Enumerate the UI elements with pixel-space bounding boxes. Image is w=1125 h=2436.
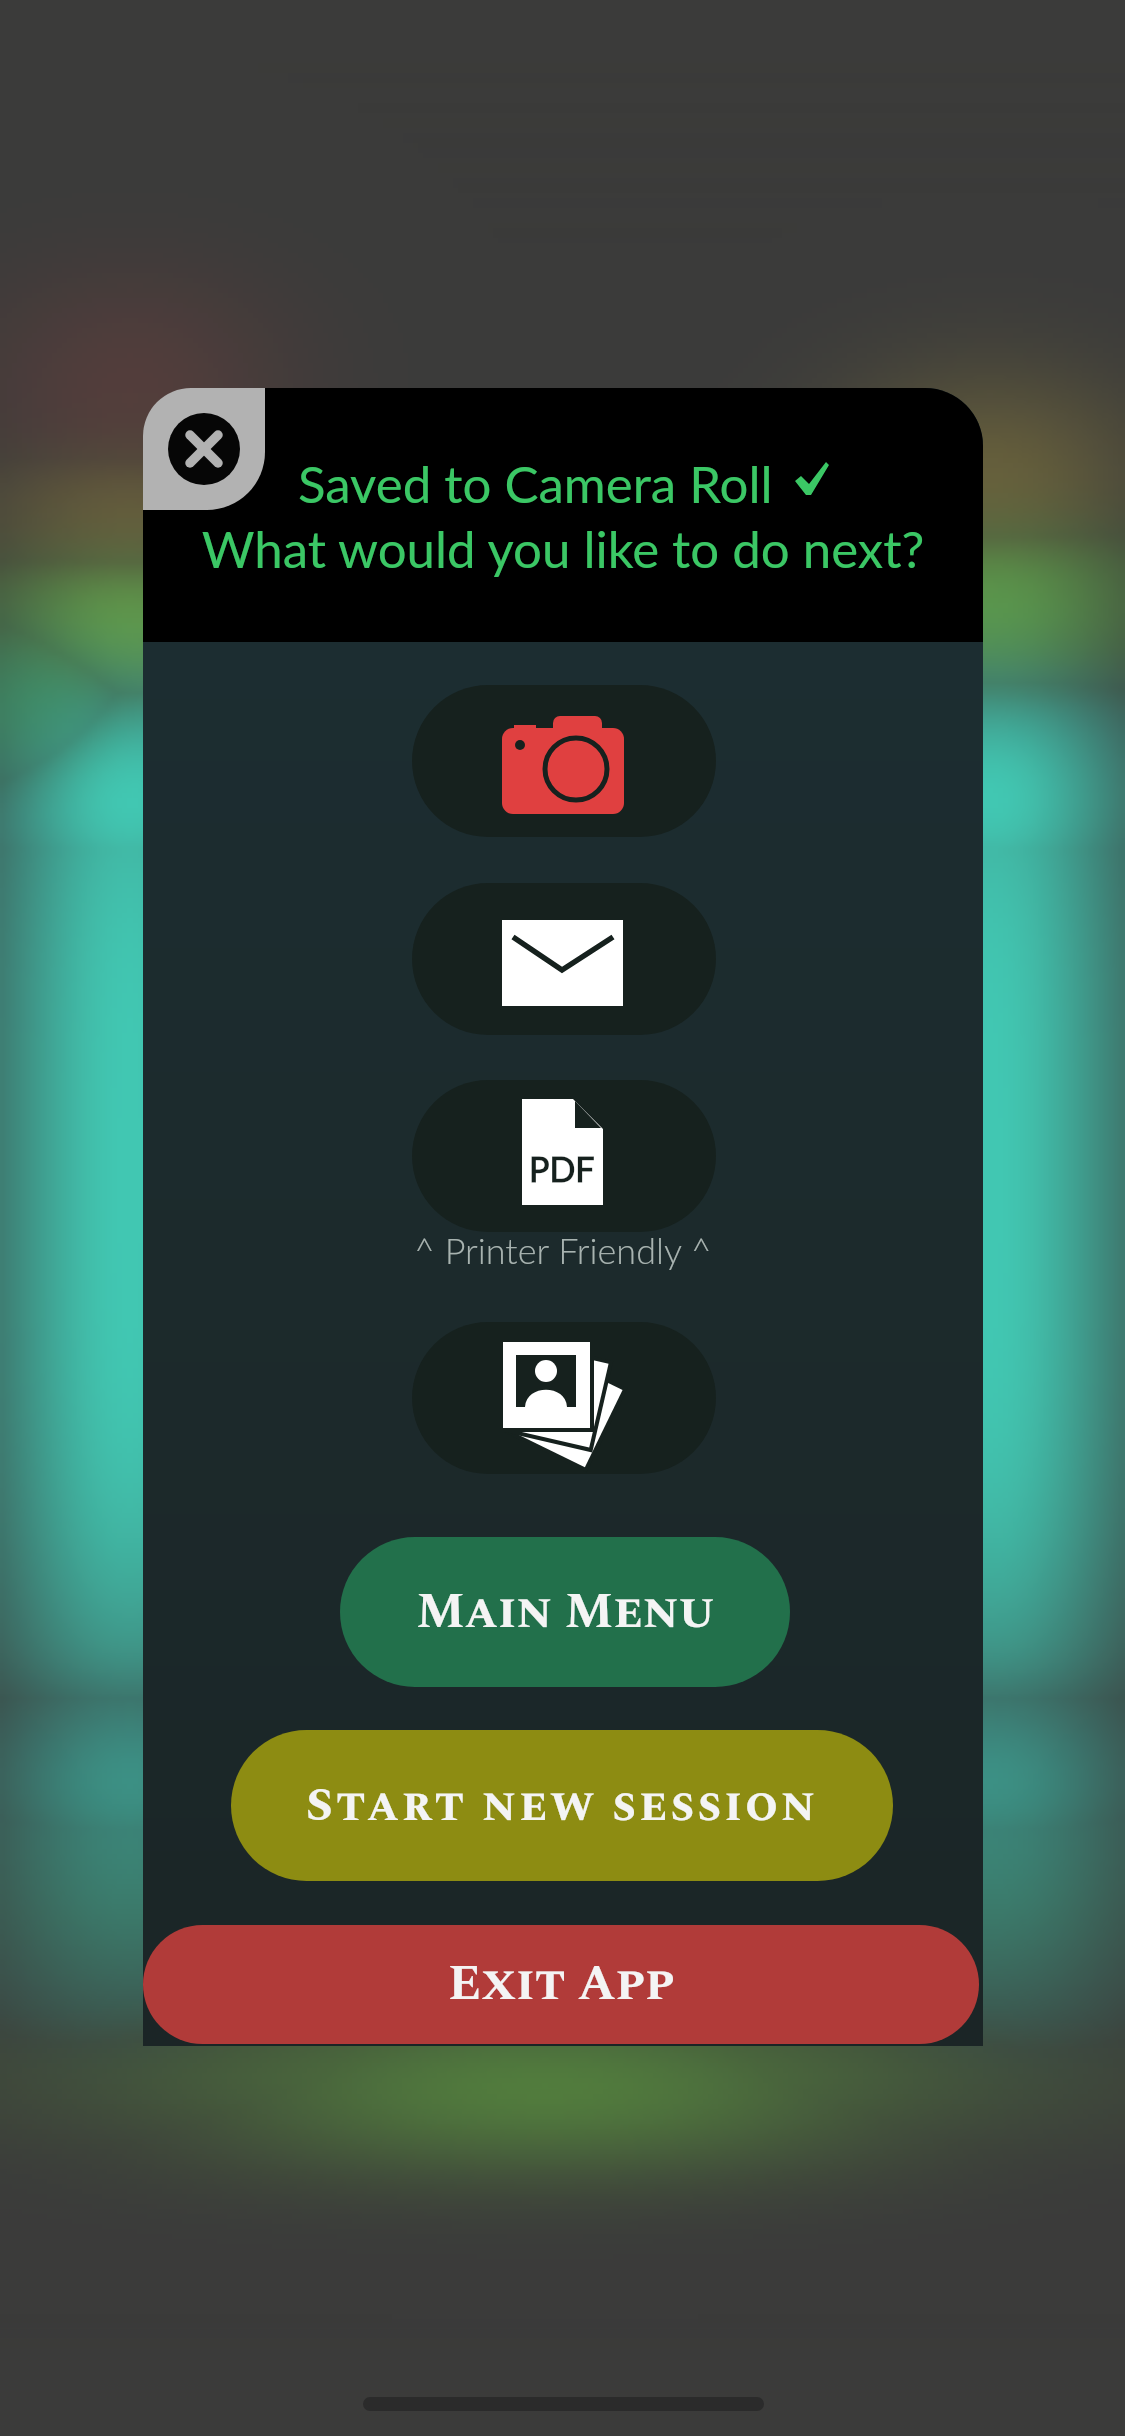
button[interactable]: Exit App (143, 1925, 979, 2044)
button[interactable]: Start new session (231, 1730, 893, 1881)
staticText: PDF (529, 1148, 595, 1189)
staticText: Saved to Camera Roll (298, 453, 773, 514)
button[interactable]: Photo gallery (412, 1322, 716, 1474)
button[interactable]: Open PDF (412, 1080, 716, 1232)
staticText: Start new session (306, 1770, 819, 1842)
button[interactable]: Save to camera roll (412, 685, 716, 837)
staticText: What would you like to do next? (143, 518, 983, 579)
staticText: Exit App (448, 1947, 675, 2022)
button[interactable]: Main Menu (340, 1537, 790, 1687)
staticText: ^ Printer Friendly ^ (414, 1228, 712, 1271)
staticText: Main Menu (416, 1575, 715, 1650)
button[interactable]: Close (143, 388, 265, 510)
button[interactable]: Email (412, 883, 716, 1035)
